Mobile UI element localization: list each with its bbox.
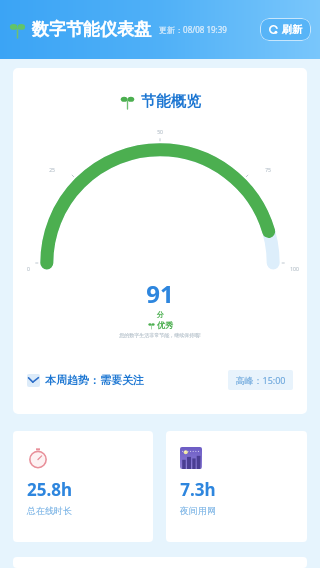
- staticText: 25: [49, 167, 55, 174]
- button[interactable]: 总在线时长: [13, 431, 153, 542]
- staticText: 本周趋势：需要关注: [45, 373, 144, 387]
- staticText: 7.3h: [180, 478, 216, 501]
- staticText: 夜间用网: [180, 505, 216, 516]
- staticText: 优秀: [157, 320, 173, 330]
- staticText: 您的数字生活非常节能，继续保持哦!: [119, 332, 201, 339]
- staticText: 分: [157, 310, 164, 319]
- staticText: 50: [157, 129, 163, 136]
- staticText: 节能概览: [141, 92, 201, 111]
- staticText: 25.8h: [27, 478, 72, 501]
- button[interactable]: 刷新: [260, 18, 311, 41]
- other: 夜间用网: [180, 447, 202, 469]
- other: 刷新: [269, 25, 278, 34]
- staticText: 数字节能仪表盘: [32, 19, 151, 40]
- staticText: 0: [27, 266, 30, 273]
- staticText: 总在线时长: [27, 505, 72, 516]
- staticText: 更新：08/08 19:39: [159, 24, 227, 35]
- button[interactable]: 夜间用网: [166, 431, 307, 542]
- button[interactable]: 高峰：15:00: [228, 370, 293, 390]
- staticText: 高峰：15:00: [235, 374, 286, 386]
- staticText: 100: [290, 266, 299, 273]
- staticText: 刷新: [282, 23, 302, 36]
- staticText: 75: [265, 167, 271, 174]
- other: 总在线时长: [27, 447, 49, 469]
- staticText: 91: [146, 277, 174, 310]
- button[interactable]: 节能概览: [13, 68, 307, 414]
